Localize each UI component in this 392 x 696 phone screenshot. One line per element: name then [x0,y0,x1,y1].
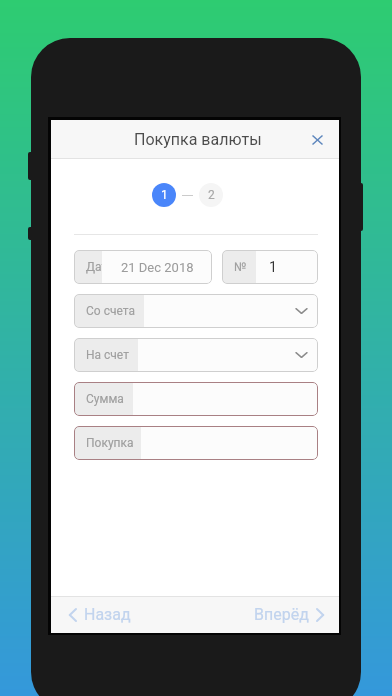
button[interactable]: Покупка [74,426,318,460]
staticText: Покупка валюты [134,130,262,149]
button[interactable]: Назад [69,605,131,624]
button[interactable]: На счет [74,338,318,372]
button[interactable]: Close [303,126,331,154]
button[interactable]: № [222,250,318,284]
staticText: 2 [208,188,215,202]
staticText: 1 [269,259,277,275]
staticText: Со счета [86,304,144,318]
staticText: Вперёд [254,605,309,624]
staticText: Сумма [86,392,133,406]
staticText: Покупка [86,436,141,450]
button[interactable]: Дат [74,250,212,284]
staticText: № [234,260,256,274]
staticText: 21 Dec 2018 [121,260,194,275]
staticText: На счет [86,348,138,362]
staticText: 1 [161,188,168,202]
button[interactable]: Со счета [74,294,318,328]
button[interactable]: 2 [199,183,223,207]
button[interactable]: Вперёд [254,605,324,624]
staticText: Дат [86,260,102,274]
staticText: Назад [84,605,131,624]
button[interactable]: Сумма [74,382,318,416]
button[interactable]: 1 [152,183,176,207]
